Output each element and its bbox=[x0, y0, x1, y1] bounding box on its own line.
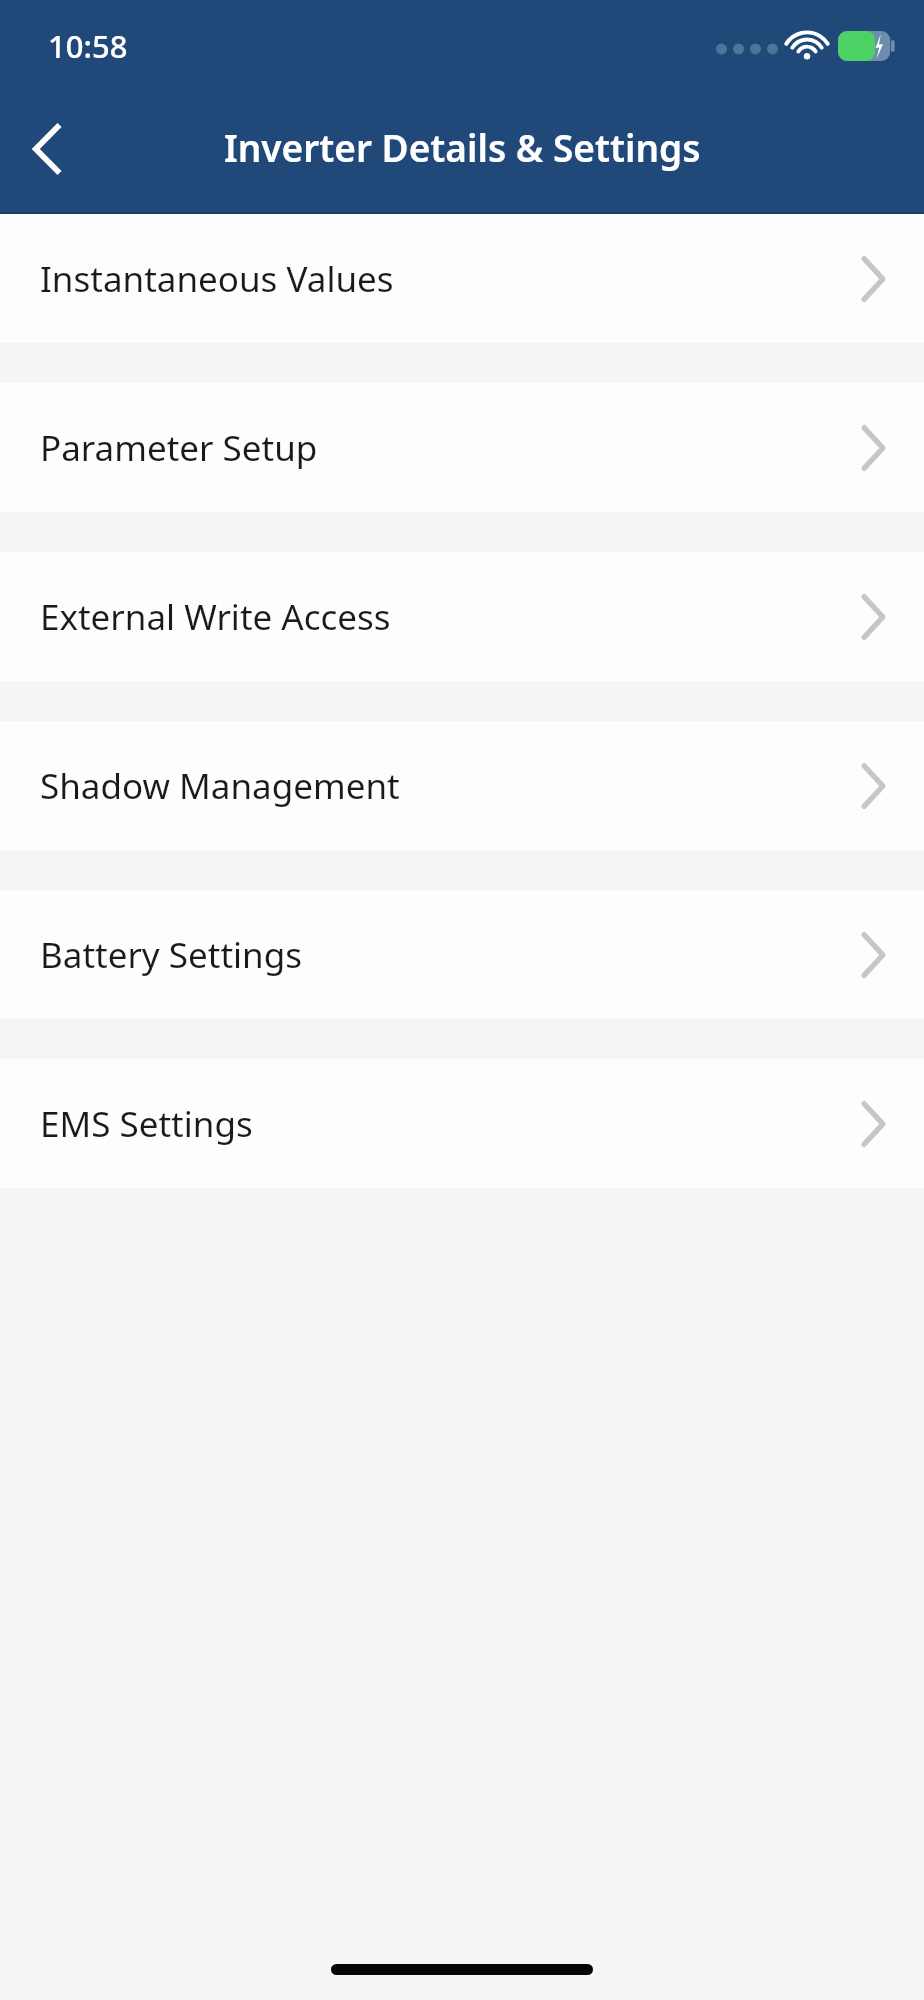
button[interactable]: Shadow Management bbox=[0, 721, 924, 850]
button[interactable]: Battery Settings bbox=[0, 890, 924, 1019]
button[interactable]: Parameter Setup bbox=[0, 383, 924, 512]
button[interactable]: EMS Settings bbox=[0, 1059, 924, 1188]
staticText: Inverter Details & Settings bbox=[224, 122, 701, 172]
staticText: Parameter Setup bbox=[40, 424, 318, 472]
button[interactable]: External Write Access bbox=[0, 552, 924, 681]
button[interactable]: Instantaneous Values bbox=[0, 214, 924, 343]
staticText: 10:58 bbox=[48, 25, 128, 67]
button[interactable]: Back bbox=[0, 101, 96, 197]
staticText: Shadow Management bbox=[40, 762, 400, 810]
staticText: Instantaneous Values bbox=[40, 255, 394, 303]
staticText: Battery Settings bbox=[40, 931, 302, 979]
staticText: EMS Settings bbox=[40, 1100, 253, 1148]
staticText: External Write Access bbox=[40, 593, 391, 641]
